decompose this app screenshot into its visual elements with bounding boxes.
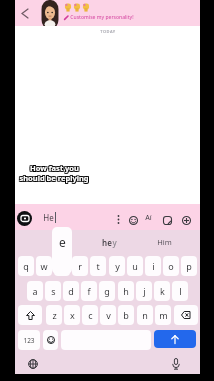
staticText: How fast you xyxy=(29,163,78,173)
staticText: v xyxy=(106,309,111,321)
staticText: j xyxy=(143,285,146,297)
staticText: should be replying xyxy=(18,173,88,183)
staticText: o xyxy=(168,260,174,272)
staticText: Aí xyxy=(145,213,152,223)
staticText: Him xyxy=(157,237,172,247)
button[interactable]: l xyxy=(172,281,188,301)
staticText: m xyxy=(159,309,168,321)
button[interactable]: k xyxy=(154,281,170,301)
button[interactable] xyxy=(174,305,198,325)
staticText: l xyxy=(179,285,182,297)
staticText: he xyxy=(102,237,112,248)
staticText: h xyxy=(123,285,129,297)
button[interactable]: 123 xyxy=(18,330,40,350)
button[interactable]: o xyxy=(163,256,179,276)
staticText: g xyxy=(104,285,110,297)
staticText: u xyxy=(132,260,138,272)
staticText: should be replying xyxy=(19,174,89,184)
button[interactable] xyxy=(117,215,120,224)
button[interactable]: p xyxy=(181,256,197,276)
staticText: Customise my personality! xyxy=(70,14,134,21)
staticText: s xyxy=(51,285,56,297)
staticText: 123 xyxy=(23,336,35,345)
button[interactable]: r xyxy=(72,256,88,276)
staticText: How fast you xyxy=(31,163,80,173)
button[interactable]: c xyxy=(82,305,98,325)
staticText: y xyxy=(112,237,117,248)
button[interactable]: Customise my personality! xyxy=(64,3,134,21)
staticText: q xyxy=(23,260,29,272)
staticText: t xyxy=(96,260,100,272)
button[interactable] xyxy=(172,358,180,370)
button[interactable]: j xyxy=(136,281,152,301)
staticText: k xyxy=(160,285,165,297)
staticText: i xyxy=(152,260,155,272)
staticText: should be replying xyxy=(20,174,90,184)
button[interactable]: z xyxy=(46,305,62,325)
button[interactable]: b xyxy=(118,305,134,325)
staticText: w xyxy=(40,260,48,272)
button[interactable] xyxy=(154,330,196,348)
staticText: should be replying xyxy=(18,172,88,182)
staticText: r xyxy=(78,260,82,272)
staticText: How fast you xyxy=(29,164,78,174)
staticText: How fast you xyxy=(30,163,79,173)
staticText: How fast you xyxy=(30,162,79,172)
button[interactable]: Aí xyxy=(145,213,152,223)
button[interactable]: t xyxy=(90,256,106,276)
button[interactable] xyxy=(17,211,32,226)
button[interactable] xyxy=(43,330,58,350)
button[interactable]: he xyxy=(102,237,117,248)
staticText: e xyxy=(59,234,66,250)
staticText: How fast you xyxy=(31,164,80,174)
staticText: How fast you xyxy=(31,162,80,172)
button[interactable]: n xyxy=(137,305,153,325)
button[interactable] xyxy=(22,9,28,18)
button[interactable]: g xyxy=(99,281,115,301)
staticText: should be replying xyxy=(20,172,90,182)
button[interactable]: w xyxy=(36,256,52,276)
staticText: should be replying xyxy=(19,173,89,183)
button[interactable]: v xyxy=(100,305,116,325)
staticText: a xyxy=(32,285,38,297)
button[interactable]: y xyxy=(109,256,125,276)
staticText: TODAY xyxy=(100,29,116,34)
staticText: p xyxy=(186,260,192,272)
button[interactable]: m xyxy=(155,305,171,325)
button[interactable]: h xyxy=(118,281,134,301)
staticText: d xyxy=(68,285,74,297)
staticText: z xyxy=(52,309,57,321)
button[interactable] xyxy=(18,305,42,325)
button[interactable]: u xyxy=(127,256,143,276)
staticText: should be replying xyxy=(19,172,89,182)
button[interactable]: f xyxy=(81,281,97,301)
button[interactable] xyxy=(28,359,38,369)
staticText: c xyxy=(88,309,93,321)
staticText: should be replying xyxy=(20,173,90,183)
staticText: How fast you xyxy=(30,164,79,174)
button[interactable]: x xyxy=(64,305,80,325)
staticText: x xyxy=(70,309,75,321)
staticText: b xyxy=(123,309,129,321)
button[interactable]: d xyxy=(63,281,79,301)
staticText: He xyxy=(43,212,54,223)
button[interactable]: q xyxy=(18,256,34,276)
button[interactable]: i xyxy=(145,256,161,276)
button[interactable] xyxy=(54,256,70,276)
button[interactable]: a xyxy=(27,281,43,301)
button[interactable]: s xyxy=(45,281,61,301)
button[interactable] xyxy=(129,216,138,225)
staticText: should be replying xyxy=(18,174,88,184)
staticText: y xyxy=(115,260,120,272)
staticText: f xyxy=(87,285,91,297)
staticText: n xyxy=(142,309,148,321)
button[interactable] xyxy=(182,216,191,225)
staticText: How fast you xyxy=(29,162,78,172)
button[interactable] xyxy=(163,216,172,225)
button[interactable]: Him xyxy=(157,237,172,247)
